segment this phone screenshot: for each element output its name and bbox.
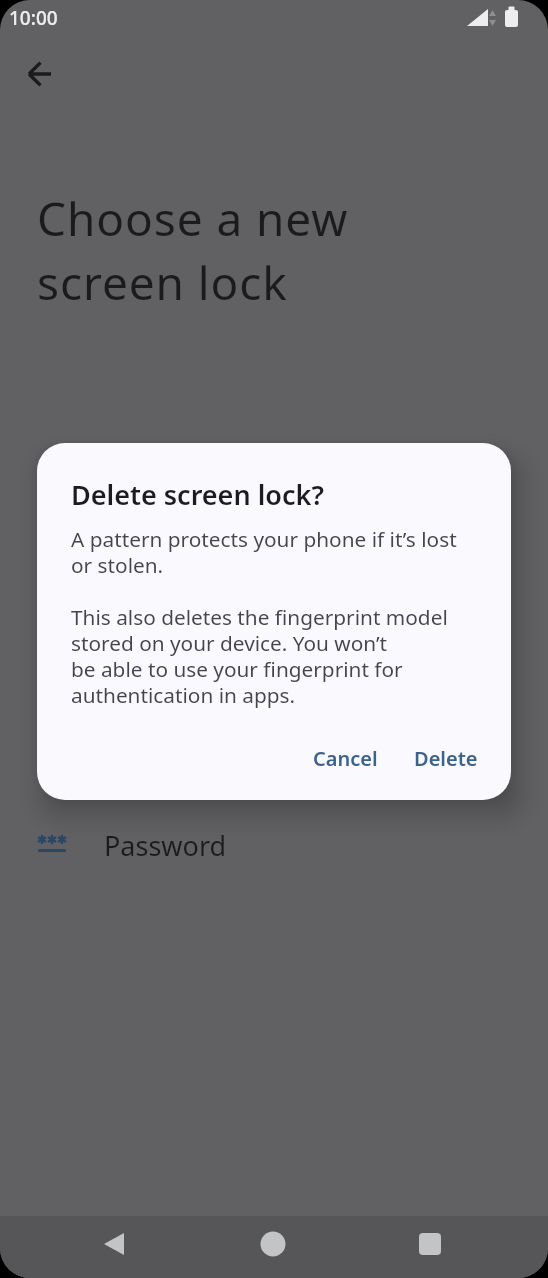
staticText: Choose a new screen lock (37, 187, 349, 314)
button[interactable]: Delete (408, 739, 484, 778)
button[interactable]: Cancel (307, 739, 384, 778)
staticText: Delete (414, 745, 478, 772)
button[interactable]: Password (0, 812, 548, 878)
staticText: Password (104, 827, 227, 864)
staticText: A pattern protects your phone if it’s lo… (71, 525, 457, 709)
staticText: Cancel (313, 745, 378, 772)
staticText: Delete screen lock? (71, 476, 324, 513)
button[interactable] (16, 50, 64, 98)
staticText: 10:00 (9, 5, 58, 31)
